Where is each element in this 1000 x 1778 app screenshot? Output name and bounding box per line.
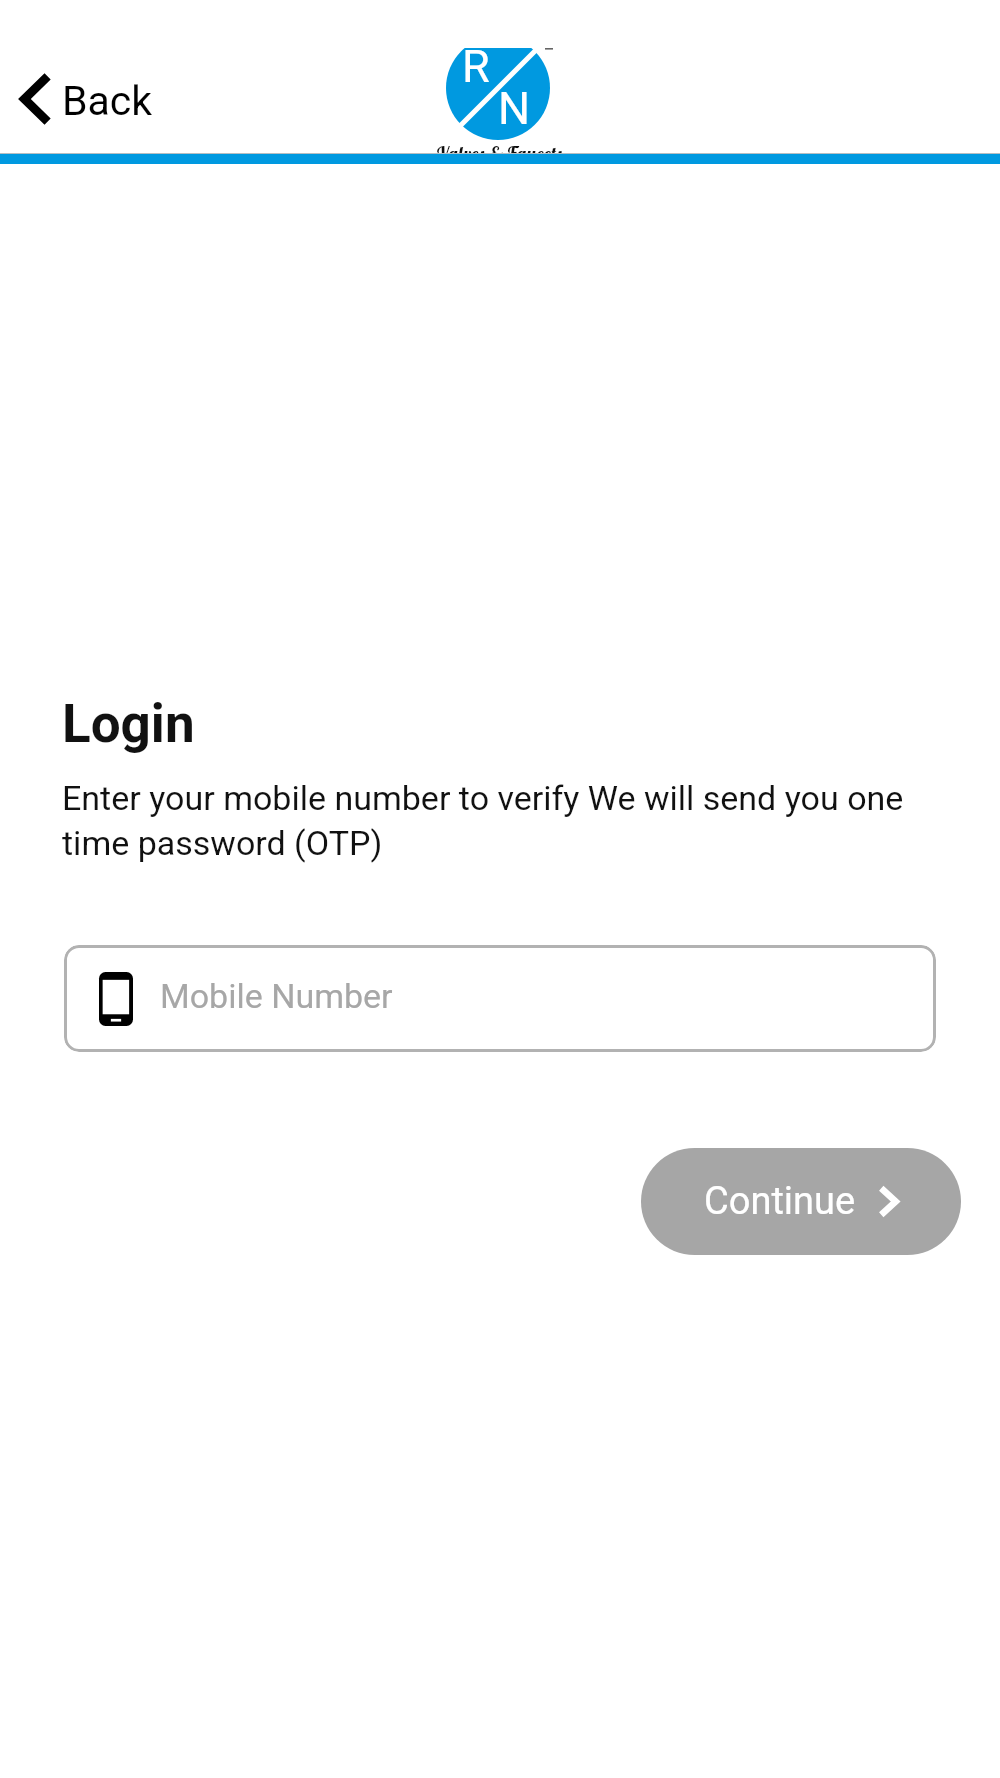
staticText: Login [62,693,195,755]
button[interactable]: Back [9,65,171,133]
button[interactable]: Mobile phone [64,945,936,1052]
staticText: R [462,40,490,93]
staticText: Back [62,77,153,125]
staticText: Valves & Faucets [436,142,564,153]
staticText: Continue [704,1179,856,1224]
staticText: Mobile Number [160,976,393,1016]
other: Mobile phone [99,972,133,1026]
other: Back [20,72,52,126]
staticText: Enter your mobile number to verify We wi… [62,778,946,864]
button[interactable]: Continue [641,1148,961,1255]
staticText: N [498,82,531,135]
